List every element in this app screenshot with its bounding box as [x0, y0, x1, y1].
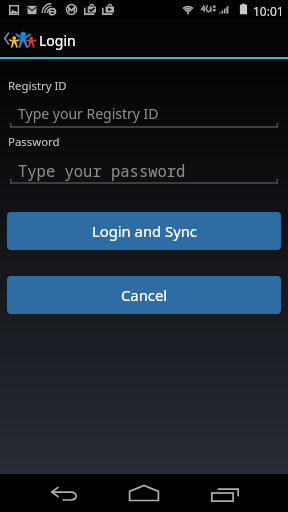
- button[interactable]: Type your Registry ID: [10, 100, 278, 129]
- staticText: Login and Sync: [92, 221, 197, 241]
- button[interactable]: Home: [118, 474, 170, 512]
- staticText: Type your Registry ID: [18, 104, 159, 123]
- staticText: Type your password: [18, 160, 186, 181]
- button[interactable]: Login and Sync: [7, 212, 281, 250]
- button[interactable]: Recent apps: [199, 475, 251, 512]
- staticText: Registry ID: [8, 78, 67, 94]
- button[interactable]: Back: [38, 475, 90, 512]
- staticText: Password: [8, 134, 60, 150]
- button[interactable]: Cancel: [7, 276, 281, 314]
- button[interactable]: Type your password: [10, 156, 278, 185]
- staticText: Login: [39, 31, 76, 50]
- staticText: Cancel: [121, 285, 168, 305]
- staticText: 10:01: [253, 3, 284, 19]
- button[interactable]: Navigate up: [0, 19, 38, 57]
